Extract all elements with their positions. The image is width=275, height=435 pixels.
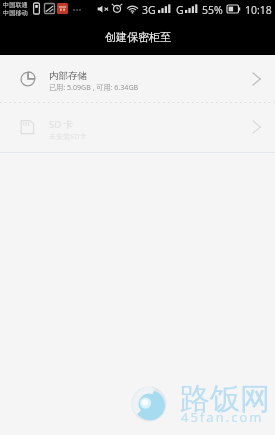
button[interactable]: 内部存储 [0, 55, 275, 103]
staticText: 10:18 [245, 3, 272, 17]
staticText: 未安装SD卡 [49, 131, 87, 141]
staticText: 内部存储 [49, 70, 87, 82]
staticText: 路饭网 [180, 380, 270, 418]
staticText: 45fan.com [181, 408, 264, 426]
other: Open [249, 120, 263, 134]
staticText: 中国移动 [3, 9, 28, 17]
staticText: 中国联通 [3, 1, 28, 9]
staticText: 3G [142, 3, 156, 17]
staticText: 已用: 5.09GB , 可用: 6.34GB [49, 82, 139, 92]
staticText: 55% [202, 3, 223, 17]
staticText: SD 卡 [49, 118, 74, 131]
staticText: 创建保密柜至 [105, 30, 171, 44]
staticText: G [176, 3, 184, 17]
other: Open [249, 72, 263, 86]
